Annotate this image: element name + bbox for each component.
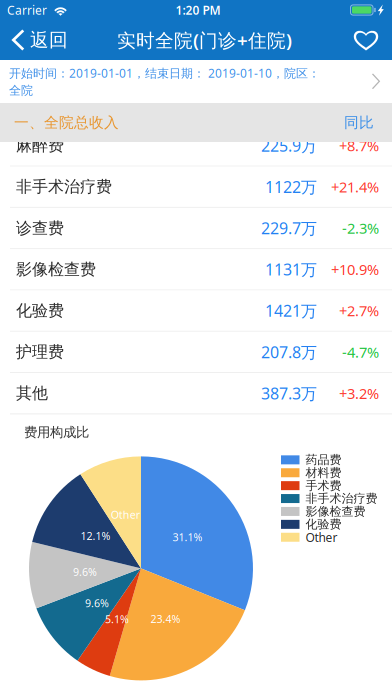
staticText: 1:20 PM bbox=[175, 2, 220, 18]
staticText: 31.1% bbox=[172, 530, 202, 544]
staticText: 同比 bbox=[344, 113, 374, 131]
staticText: 化验费 bbox=[16, 301, 64, 320]
staticText: 12.1% bbox=[80, 529, 110, 543]
staticText: 23.4% bbox=[150, 612, 180, 626]
staticText: Carrier bbox=[7, 2, 47, 18]
staticText: 护理费 bbox=[16, 342, 64, 362]
staticText: 5.1% bbox=[105, 612, 129, 626]
staticText: 其他 bbox=[16, 383, 48, 403]
staticText: +2.7% bbox=[339, 301, 379, 320]
staticText: Other bbox=[111, 508, 140, 522]
staticText: 非手术治疗费 bbox=[305, 491, 377, 506]
button[interactable]: 收藏 bbox=[322, 20, 392, 60]
staticText: 1122万 bbox=[265, 176, 317, 197]
staticText: 225.9万 bbox=[261, 135, 317, 156]
staticText: +3.2% bbox=[339, 383, 379, 403]
staticText: 材料费 bbox=[305, 465, 341, 480]
staticText: 影像检查费 bbox=[305, 504, 365, 519]
button[interactable]: 开始时间：2019-01-01，结束日期： 2019-01-10，院区： bbox=[0, 60, 392, 103]
button[interactable]: 返回 bbox=[0, 20, 84, 60]
staticText: -4.7% bbox=[342, 342, 379, 362]
staticText: 387.3万 bbox=[261, 383, 317, 404]
staticText: 9.6% bbox=[85, 596, 109, 610]
staticText: 实时全院(门诊+住院) bbox=[117, 28, 292, 52]
staticText: 1421万 bbox=[265, 300, 317, 321]
staticText: 非手术治疗费 bbox=[16, 177, 112, 197]
staticText: 开始时间：2019-01-01，结束日期： 2019-01-10，院区： bbox=[9, 65, 320, 81]
staticText: 化验费 bbox=[305, 517, 341, 532]
staticText: 诊查费 bbox=[16, 218, 64, 238]
staticText: 手术费 bbox=[305, 478, 341, 493]
staticText: 费用构成比 bbox=[24, 424, 89, 441]
staticText: 麻醉费 bbox=[16, 136, 64, 155]
staticText: +21.4% bbox=[331, 177, 379, 196]
staticText: 9.6% bbox=[73, 565, 97, 579]
staticText: -2.3% bbox=[342, 218, 379, 238]
staticText: +8.7% bbox=[339, 136, 379, 155]
staticText: +10.9% bbox=[331, 260, 379, 279]
staticText: 一、全院总收入 bbox=[14, 113, 119, 131]
staticText: Other bbox=[305, 529, 337, 545]
staticText: 返回 bbox=[30, 28, 68, 51]
staticText: 全院 bbox=[9, 83, 33, 98]
staticText: 229.7万 bbox=[261, 217, 317, 239]
staticText: 1131万 bbox=[265, 259, 317, 280]
staticText: 药品费 bbox=[305, 452, 341, 467]
staticText: 影像检查费 bbox=[16, 259, 96, 279]
staticText: 207.8万 bbox=[261, 341, 317, 362]
